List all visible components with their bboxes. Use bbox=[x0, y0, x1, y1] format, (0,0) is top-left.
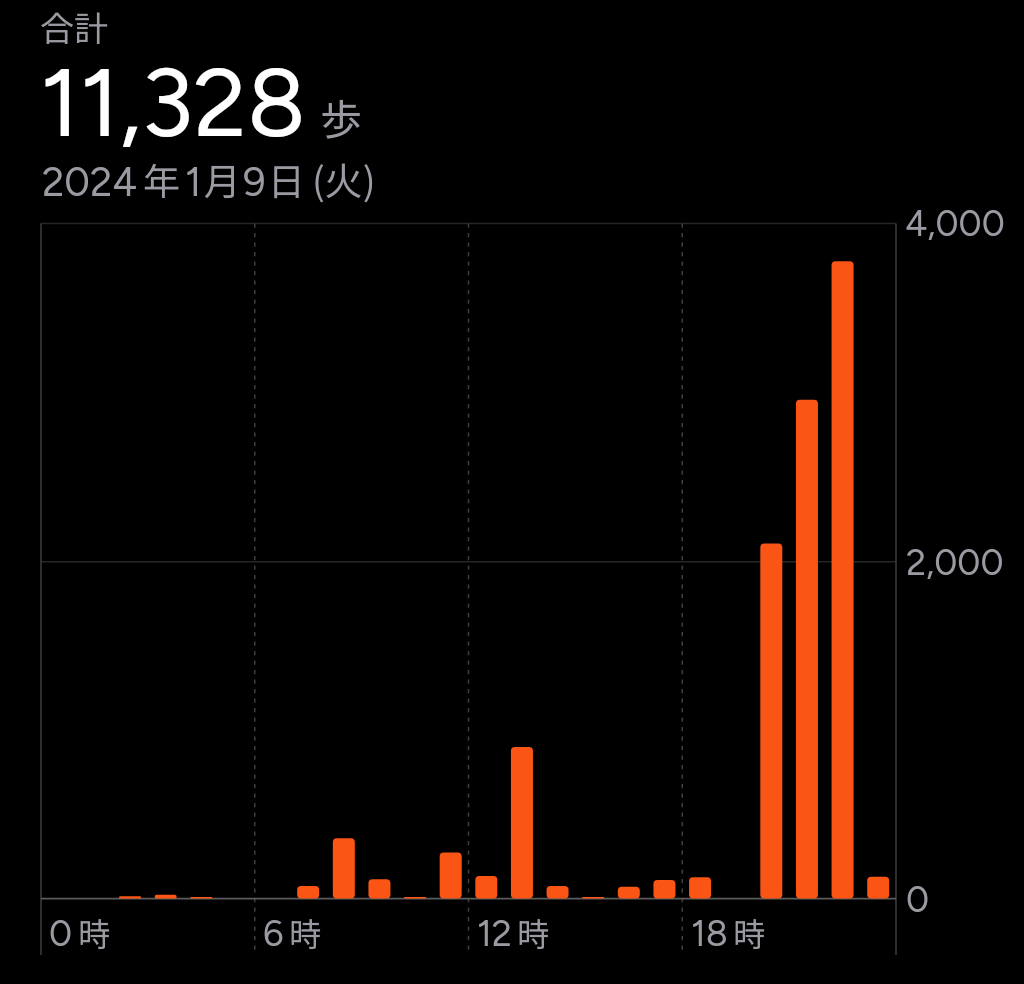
staticText: 月 bbox=[204, 152, 241, 206]
staticText: 時 bbox=[733, 909, 766, 955]
button[interactable]: 1時間ごとの歩数グラフ bbox=[20, 205, 1004, 960]
staticText: 12 bbox=[477, 912, 512, 955]
staticText: 年 bbox=[143, 152, 180, 206]
staticText: 0 bbox=[49, 912, 73, 955]
staticText: 11,328 bbox=[40, 45, 306, 160]
staticText: 時 bbox=[78, 909, 111, 955]
staticText: 0 bbox=[906, 878, 930, 921]
staticText: 1 bbox=[185, 158, 202, 206]
staticText: 日 bbox=[268, 152, 305, 206]
staticText: 時 bbox=[289, 909, 322, 955]
staticText: (火) bbox=[312, 151, 376, 206]
staticText: 2,000 bbox=[906, 541, 1004, 584]
staticText: 合計 bbox=[40, 2, 108, 51]
staticText: 9 bbox=[243, 158, 266, 206]
staticText: 時 bbox=[517, 909, 550, 955]
staticText: 18 bbox=[691, 912, 728, 955]
staticText: 4,000 bbox=[905, 202, 1005, 245]
button[interactable]: 2024 bbox=[42, 151, 376, 206]
staticText: 6 bbox=[263, 912, 284, 955]
staticText: 2024 bbox=[42, 158, 138, 206]
staticText: 歩 bbox=[320, 86, 363, 147]
